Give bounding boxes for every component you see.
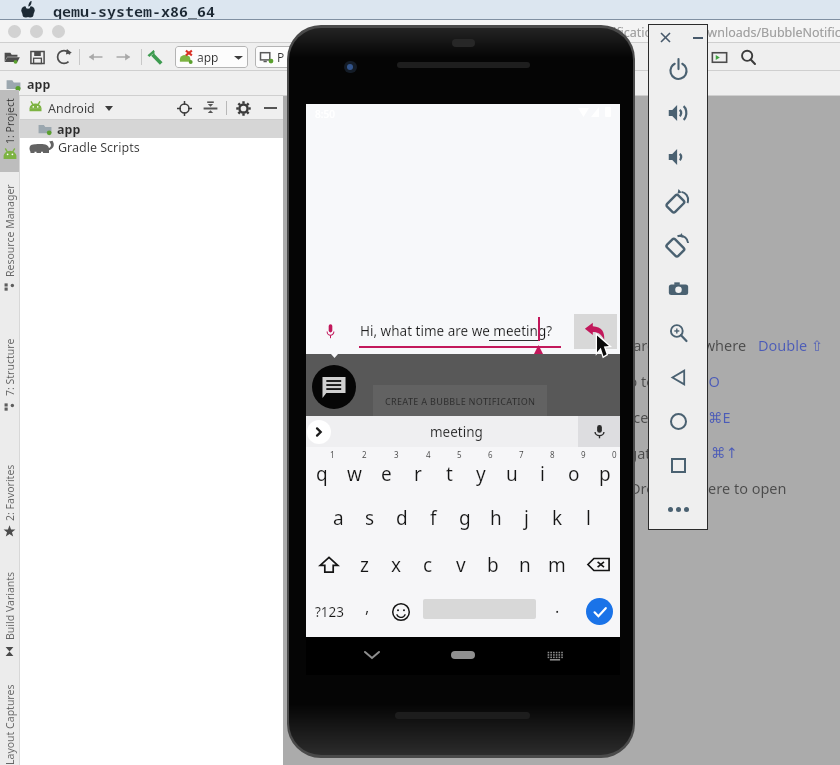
staticText: Drop files here to open (630, 478, 787, 498)
button[interactable]: y (465, 447, 496, 494)
button[interactable]: Emoji (384, 588, 418, 635)
button[interactable]: More suggestions (307, 420, 331, 444)
button[interactable]: x (380, 541, 412, 588)
button[interactable]: Select opened file (175, 99, 193, 117)
staticText: ⌘↑ (711, 445, 738, 462)
button[interactable]: m (541, 541, 573, 588)
staticText: 8:50 (315, 107, 335, 121)
button[interactable]: Chat bubble (312, 365, 356, 409)
button[interactable]: app (175, 46, 248, 68)
button[interactable]: w (338, 447, 370, 494)
button[interactable]: Forward (112, 46, 134, 68)
button[interactable]: q (306, 447, 338, 494)
button[interactable]: Sync project (53, 46, 75, 68)
button[interactable]: r (402, 447, 434, 494)
button[interactable]: Save all (26, 46, 48, 68)
staticText: l (586, 505, 591, 531)
button[interactable]: j (511, 494, 542, 541)
button[interactable]: Backspace (578, 541, 618, 588)
staticText: Recent Files (616, 407, 697, 427)
button[interactable]: Open project (1, 46, 23, 68)
button[interactable]: Take screenshot (648, 267, 708, 311)
button[interactable]: Overview (648, 443, 708, 487)
staticText: app (27, 76, 51, 93)
button[interactable]: Rotate left (648, 179, 708, 223)
staticText: p (599, 461, 611, 487)
button[interactable]: 1: Project (0, 90, 19, 172)
button[interactable]: t (434, 447, 465, 494)
button[interactable]: Done (578, 588, 620, 635)
button[interactable]: u (496, 447, 527, 494)
button[interactable]: e (370, 447, 402, 494)
button[interactable]: Voice typing (578, 416, 620, 447)
button[interactable]: s (354, 494, 386, 541)
button[interactable]: Search (737, 46, 759, 68)
button[interactable]: Volume up (648, 91, 708, 135)
button[interactable]: Hide (261, 99, 279, 117)
staticText: u (506, 461, 518, 487)
button[interactable]: . (544, 588, 570, 635)
staticText: n (519, 552, 531, 578)
button[interactable]: a (322, 494, 354, 541)
staticText: 6 (488, 449, 493, 460)
button[interactable]: k (542, 494, 573, 541)
button[interactable]: Voice input (324, 322, 337, 340)
staticText: P (277, 49, 285, 65)
button[interactable]: More (648, 487, 708, 531)
button[interactable]: g (449, 494, 480, 541)
staticText: c (423, 552, 433, 578)
button[interactable]: c (412, 541, 444, 588)
button[interactable]: b (477, 541, 509, 588)
button[interactable]: z (348, 541, 380, 588)
staticText: 2: Favorites (3, 464, 17, 521)
staticText: e (381, 461, 392, 487)
staticText: a (333, 505, 344, 531)
button[interactable]: Home (648, 399, 708, 443)
button[interactable]: Settings (234, 99, 252, 117)
button[interactable]: i (527, 447, 558, 494)
staticText: k (552, 505, 563, 531)
button[interactable]: Build Variants (0, 556, 19, 668)
button[interactable]: Send reply (574, 314, 617, 349)
button[interactable]: Minimize (689, 29, 706, 46)
button[interactable]: P (255, 46, 315, 68)
button[interactable]: CREATE A BUBBLE NOTIFICATION (373, 385, 547, 416)
button[interactable]: v (445, 541, 477, 588)
button[interactable]: f (418, 494, 449, 541)
button[interactable]: 2: Favorites (0, 445, 19, 548)
button[interactable]: d (386, 494, 418, 541)
button[interactable]: Gradle Scripts (20, 138, 283, 156)
button[interactable]: Resource Manager (0, 180, 19, 300)
button[interactable]: Close (657, 29, 674, 46)
button[interactable]: Volume down (648, 135, 708, 179)
button[interactable]: l (573, 494, 604, 541)
button[interactable]: Back (648, 355, 708, 399)
button[interactable]: 7: Structure (0, 318, 19, 420)
staticText: 9 (581, 449, 586, 460)
button[interactable]: Hide keyboard (352, 637, 392, 673)
button[interactable]: , (354, 588, 380, 635)
button[interactable]: Zoom (648, 311, 708, 355)
staticText: BubbleNotification – ~/Downloads/BubbleN… (550, 24, 840, 41)
button[interactable]: AVD Manager (708, 46, 730, 68)
button[interactable]: ?123 (306, 588, 352, 635)
button[interactable]: p (589, 447, 620, 494)
button[interactable]: Power (648, 47, 708, 91)
staticText: app (57, 121, 81, 138)
button[interactable]: Home (443, 637, 483, 673)
button[interactable]: Switch keyboard (535, 637, 575, 673)
button[interactable]: Collapse all (201, 99, 219, 117)
button[interactable]: app (20, 120, 283, 138)
button[interactable]: Rotate right (648, 223, 708, 267)
button[interactable]: Layout Captures (0, 684, 19, 765)
button[interactable]: Build (144, 46, 166, 68)
staticText: 5 (457, 449, 462, 460)
button[interactable]: Back (85, 46, 107, 68)
staticText: , (365, 596, 370, 618)
button[interactable]: n (509, 541, 541, 588)
staticText: Go to File (618, 371, 683, 391)
button[interactable]: h (480, 494, 511, 541)
button[interactable]: o (558, 447, 589, 494)
button[interactable]: Shift (309, 541, 349, 588)
